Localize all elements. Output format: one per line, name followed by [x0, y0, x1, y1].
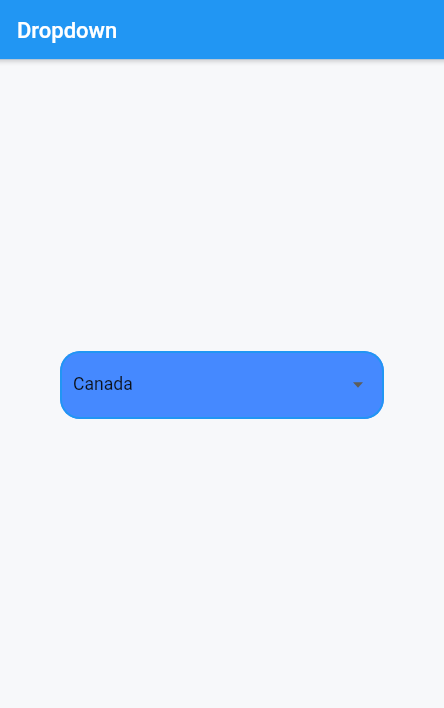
other: Open dropdown — [352, 379, 364, 391]
staticText: Dropdown — [17, 18, 118, 44]
staticText: Canada — [73, 374, 133, 395]
button[interactable]: Canada — [60, 351, 384, 419]
